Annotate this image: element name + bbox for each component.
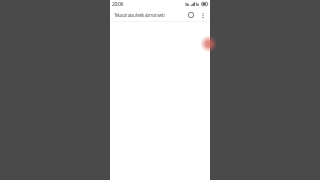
button[interactable]: Switch tabs: [184, 8, 197, 22]
button[interactable]: More options: [197, 8, 208, 22]
staticText: Telusuri atau ketik alamat web: [114, 12, 165, 18]
button[interactable]: Telusuri atau ketik alamat web: [110, 8, 184, 22]
staticText: 20:06: [112, 1, 124, 8]
